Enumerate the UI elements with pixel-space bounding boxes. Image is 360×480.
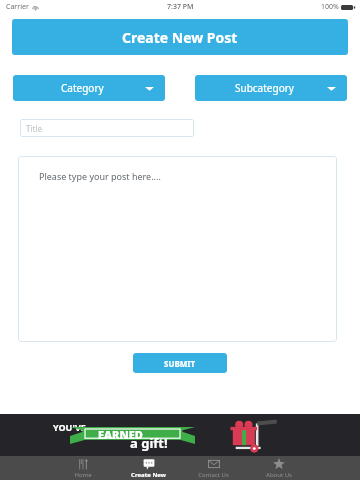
- staticText: Title: [26, 123, 42, 134]
- staticText: a gift!: [130, 434, 168, 452]
- staticText: Subcategory: [235, 81, 294, 95]
- button[interactable]: Create New: [116, 456, 181, 480]
- staticText: EARNED: [98, 427, 143, 442]
- button[interactable]: Title: [20, 119, 194, 137]
- button[interactable]: Contact Us: [181, 456, 246, 480]
- staticText: Carrier: [6, 2, 29, 12]
- staticText: Create New: [131, 471, 166, 479]
- button[interactable]: About Us: [246, 456, 311, 480]
- staticText: YOU'VE: [53, 421, 86, 433]
- button[interactable]: You've earned a gift advertisement: [0, 414, 360, 456]
- button[interactable]: Please type your post here....: [18, 156, 337, 342]
- staticText: 7:37 PM: [167, 2, 194, 12]
- button[interactable]: Category: [13, 75, 165, 101]
- button[interactable]: Home: [50, 456, 116, 480]
- staticText: Create New Post: [122, 28, 238, 47]
- staticText: About Us: [266, 471, 292, 479]
- staticText: 100%: [321, 2, 339, 12]
- staticText: SUBMIT: [164, 358, 196, 369]
- staticText: Contact Us: [198, 471, 229, 479]
- staticText: Please type your post here....: [39, 170, 161, 182]
- button[interactable]: Create New Post: [12, 19, 348, 55]
- button[interactable]: Subcategory: [195, 75, 347, 101]
- button[interactable]: SUBMIT: [133, 353, 227, 373]
- staticText: Category: [61, 81, 104, 95]
- staticText: Home: [74, 471, 92, 479]
